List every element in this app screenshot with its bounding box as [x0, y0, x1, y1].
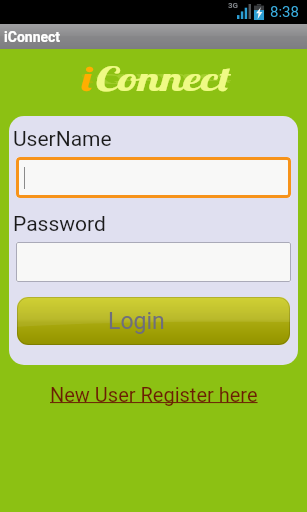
staticText: Password [13, 212, 106, 237]
staticText: iConnect [4, 29, 61, 45]
staticText: New User Register here [50, 383, 258, 406]
button[interactable]: New User Register here [44, 379, 264, 410]
staticText: Login [108, 308, 165, 335]
staticText: Connect [95, 57, 232, 100]
staticText: UserName [13, 127, 112, 152]
button[interactable] [16, 242, 291, 282]
staticText: i [81, 71, 95, 87]
button[interactable] [16, 157, 291, 198]
staticText: 8:38 [270, 3, 299, 21]
staticText: 3G [228, 1, 239, 10]
staticText: Connect [95, 71, 232, 87]
staticText: i [81, 57, 95, 100]
button[interactable]: Login [17, 297, 290, 345]
